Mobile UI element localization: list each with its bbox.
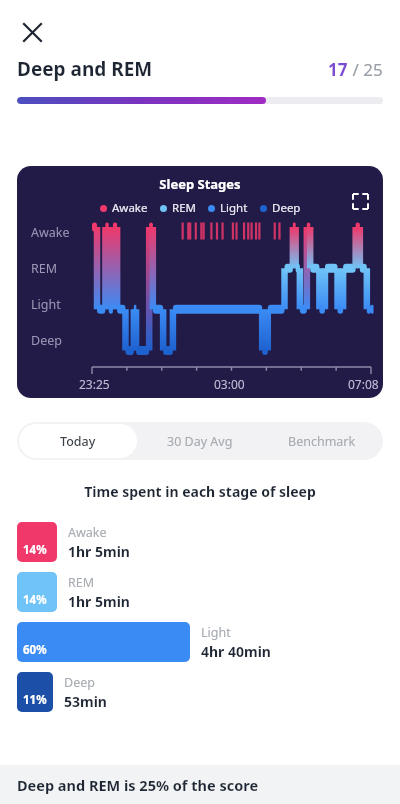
staticText: Deep and REM bbox=[17, 56, 153, 82]
staticText: Deep bbox=[272, 200, 301, 216]
staticText: Deep and REM is 25% of the score bbox=[17, 775, 259, 795]
staticText: 11% bbox=[23, 692, 47, 708]
staticText: Awake bbox=[31, 224, 70, 241]
button[interactable]: Today bbox=[19, 424, 137, 458]
staticText: Today bbox=[60, 433, 96, 450]
staticText: Light bbox=[201, 624, 231, 641]
staticText: Benchmark bbox=[288, 433, 356, 450]
staticText: 03:00 bbox=[214, 376, 245, 392]
staticText: Awake bbox=[112, 200, 148, 216]
button[interactable]: 11% bbox=[0, 672, 400, 712]
staticText: Deep bbox=[31, 332, 62, 349]
staticText: REM bbox=[31, 260, 58, 277]
staticText: REM bbox=[68, 574, 95, 591]
staticText: Deep bbox=[64, 674, 95, 691]
button[interactable]: 14% bbox=[0, 572, 400, 612]
button[interactable]: Expand chart bbox=[347, 188, 373, 214]
staticText: 30 Day Avg bbox=[167, 433, 233, 450]
button[interactable]: 30 Day Avg bbox=[141, 424, 259, 458]
button[interactable]: 60% bbox=[0, 622, 400, 662]
staticText: 17 bbox=[328, 58, 348, 81]
staticText: 07:08 bbox=[348, 376, 379, 392]
staticText: 1hr 5min bbox=[68, 542, 130, 561]
staticText: 14% bbox=[23, 592, 47, 608]
staticText: Sleep Stages bbox=[17, 175, 383, 193]
button[interactable]: Close bbox=[14, 14, 50, 50]
staticText: Time spent in each stage of sleep bbox=[0, 482, 400, 501]
staticText: Light bbox=[31, 296, 61, 313]
staticText: 23:25 bbox=[79, 376, 110, 392]
staticText: 53min bbox=[64, 692, 107, 711]
staticText: 4hr 40min bbox=[201, 642, 271, 661]
staticText: Light bbox=[220, 200, 248, 216]
staticText: Awake bbox=[68, 524, 107, 541]
staticText: REM bbox=[172, 200, 196, 216]
staticText: 60% bbox=[23, 642, 47, 658]
staticText: 14% bbox=[23, 542, 47, 558]
staticText: / 25 bbox=[348, 58, 383, 81]
staticText: 1hr 5min bbox=[68, 592, 130, 611]
button[interactable]: 14% bbox=[0, 522, 400, 562]
button[interactable]: Benchmark bbox=[263, 424, 381, 458]
